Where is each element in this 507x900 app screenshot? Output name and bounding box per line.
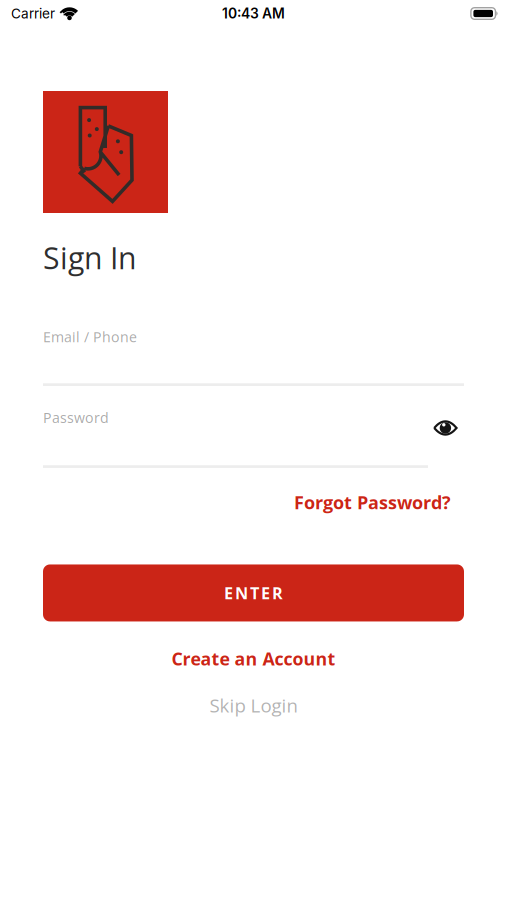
staticText: Forgot Password? — [294, 490, 451, 514]
staticText: Password — [43, 408, 109, 427]
button[interactable]: Forgot Password? — [294, 490, 451, 514]
staticText: Email / Phone — [43, 327, 137, 346]
button[interactable]: Skip Login — [209, 693, 297, 718]
staticText: E N T E R — [224, 582, 283, 604]
button[interactable]: E N T E R — [43, 564, 464, 621]
staticText: Skip Login — [209, 693, 297, 718]
staticText: Create an Account — [171, 646, 335, 670]
staticText: Sign In — [43, 237, 136, 278]
staticText: 10:43 AM — [222, 5, 285, 22]
button[interactable]: Create an Account — [171, 646, 335, 670]
staticText: Carrier — [11, 5, 55, 22]
button[interactable]: Show password — [425, 421, 457, 435]
